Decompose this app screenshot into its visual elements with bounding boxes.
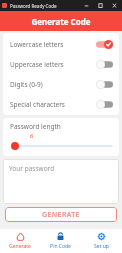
button[interactable]: Lowercase letters: [3, 34, 119, 54]
staticText: Set up: [94, 243, 109, 250]
button[interactable]: Digits (0-9): [3, 74, 119, 94]
button[interactable]: Minimize: [79, 0, 93, 11]
staticText: Generate Code: [31, 16, 91, 27]
staticText: 6: [30, 132, 34, 140]
staticText: Uppercase letters: [10, 60, 96, 69]
button[interactable]: Generate: [0, 229, 40, 253]
button[interactable]: Special characters: [3, 94, 119, 114]
staticText: Lowercase letters: [10, 40, 96, 49]
button[interactable]: Your password: [3, 159, 119, 204]
button[interactable]: Set up: [81, 229, 122, 253]
button[interactable]: Uppercase letters: [3, 54, 119, 74]
staticText: Pin Code: [50, 243, 71, 250]
button[interactable]: Close: [107, 0, 121, 11]
staticText: Digits (0-9): [10, 80, 96, 89]
staticText: Special characters: [10, 100, 96, 109]
button[interactable]: Pin Code: [40, 229, 81, 253]
button[interactable]: GENERATE: [5, 207, 117, 222]
button[interactable]: Password length slider: [10, 141, 112, 151]
staticText: Generate: [9, 243, 31, 250]
staticText: Password length: [10, 122, 61, 131]
staticText: Password Ready Code: [10, 3, 57, 9]
button[interactable]: Maximize: [93, 0, 107, 11]
staticText: GENERATE: [42, 210, 80, 220]
staticText: Your password: [9, 164, 55, 173]
